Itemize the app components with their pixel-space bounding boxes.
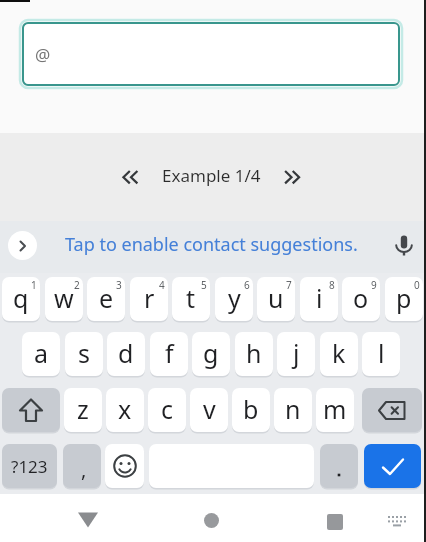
button[interactable]: k: [320, 332, 358, 376]
button[interactable]: h: [235, 332, 273, 376]
staticText: l: [378, 336, 385, 370]
staticText: 9: [371, 278, 377, 292]
button[interactable]: q: [2, 277, 40, 321]
button[interactable]: j: [277, 332, 315, 376]
staticText: ?123: [11, 455, 48, 478]
staticText: 4: [159, 278, 165, 292]
staticText: d: [118, 336, 134, 370]
button[interactable]: c: [148, 388, 186, 432]
button[interactable]: d: [107, 332, 145, 376]
button[interactable]: [105, 444, 144, 488]
staticText: 8: [329, 278, 335, 292]
staticText: b: [243, 392, 259, 426]
staticText: q: [13, 281, 29, 315]
button[interactable]: [388, 514, 406, 527]
button[interactable]: b: [232, 388, 270, 432]
button[interactable]: [122, 170, 140, 185]
button[interactable]: w: [45, 277, 83, 321]
staticText: r: [144, 281, 155, 315]
staticText: w: [54, 281, 74, 315]
staticText: 5: [201, 278, 207, 292]
button[interactable]: l: [362, 332, 400, 376]
staticText: s: [78, 336, 90, 370]
staticText: t: [186, 281, 196, 315]
button[interactable]: n: [274, 388, 312, 432]
staticText: n: [285, 392, 301, 426]
button[interactable]: y: [215, 277, 253, 321]
button[interactable]: [364, 444, 421, 488]
staticText: 3: [116, 278, 122, 292]
button[interactable]: ?123: [2, 444, 57, 488]
staticText: v: [203, 392, 216, 426]
staticText: 2: [74, 278, 80, 292]
button[interactable]: t: [172, 277, 210, 321]
button[interactable]: u: [257, 277, 295, 321]
button[interactable]: [8, 231, 37, 260]
staticText: k: [332, 336, 346, 370]
button[interactable]: [362, 388, 422, 432]
staticText: o: [353, 281, 369, 315]
button[interactable]: [204, 513, 219, 528]
button[interactable]: s: [65, 332, 103, 376]
staticText: x: [118, 392, 132, 426]
staticText: h: [246, 336, 262, 370]
staticText: @: [35, 43, 51, 66]
button[interactable]: [320, 444, 358, 488]
button[interactable]: i: [300, 277, 338, 321]
staticText: y: [228, 281, 241, 315]
button[interactable]: [2, 388, 60, 432]
staticText: 0: [414, 278, 420, 292]
button[interactable]: ,: [63, 444, 101, 488]
staticText: m: [323, 392, 347, 426]
staticText: 1: [31, 278, 37, 292]
button[interactable]: x: [106, 388, 144, 432]
button[interactable]: [283, 170, 301, 185]
button[interactable]: [394, 230, 414, 256]
button[interactable]: e: [87, 277, 125, 321]
staticText: a: [34, 336, 49, 370]
button[interactable]: @: [22, 22, 400, 86]
staticText: j: [293, 336, 300, 370]
staticText: f: [165, 336, 174, 370]
button[interactable]: m: [316, 388, 354, 432]
button[interactable]: [327, 514, 343, 530]
staticText: 6: [244, 278, 250, 292]
button[interactable]: f: [150, 332, 188, 376]
staticText: g: [203, 336, 219, 370]
staticText: i: [316, 281, 323, 315]
button[interactable]: [78, 512, 98, 528]
staticText: p: [396, 281, 412, 315]
staticText: ,: [81, 456, 87, 483]
staticText: e: [99, 281, 114, 315]
button[interactable]: g: [192, 332, 230, 376]
staticText: c: [161, 392, 174, 426]
button[interactable]: p: [385, 277, 423, 321]
staticText: z: [77, 392, 89, 426]
staticText: u: [268, 281, 284, 315]
staticText: 7: [286, 278, 292, 292]
button[interactable]: Tap to enable contact suggestions.: [65, 232, 358, 257]
button[interactable]: o: [342, 277, 380, 321]
staticText: Example 1/4: [162, 164, 261, 186]
button[interactable]: a: [22, 332, 60, 376]
button[interactable]: r: [130, 277, 168, 321]
button[interactable]: z: [64, 388, 102, 432]
button[interactable]: v: [190, 388, 228, 432]
